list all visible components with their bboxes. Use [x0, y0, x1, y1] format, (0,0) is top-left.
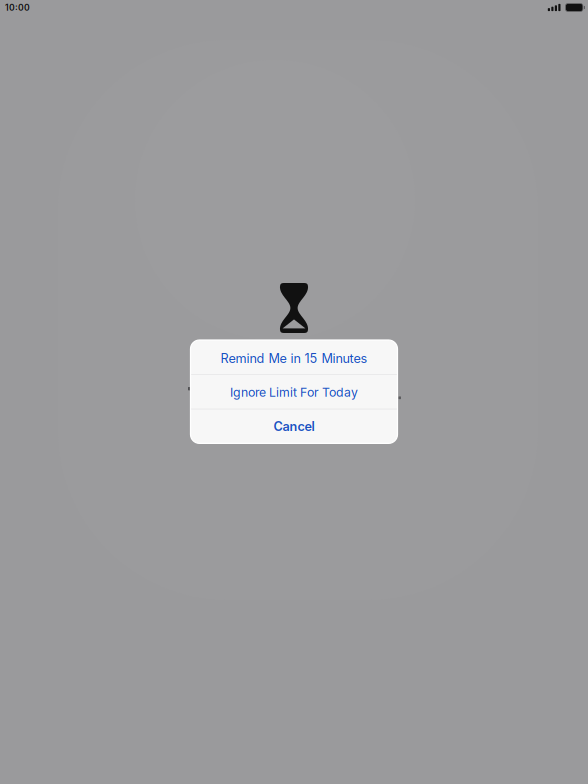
staticText: 10:00: [5, 2, 30, 13]
button[interactable]: Remind Me in 15 Minutes: [190, 340, 397, 374]
button[interactable]: Cancel: [190, 409, 397, 443]
button[interactable]: Ignore Limit For Today: [190, 375, 397, 409]
staticText: Cancel: [273, 419, 314, 434]
staticText: Ignore Limit For Today: [230, 385, 358, 400]
staticText: Remind Me in 15 Minutes: [220, 351, 367, 366]
